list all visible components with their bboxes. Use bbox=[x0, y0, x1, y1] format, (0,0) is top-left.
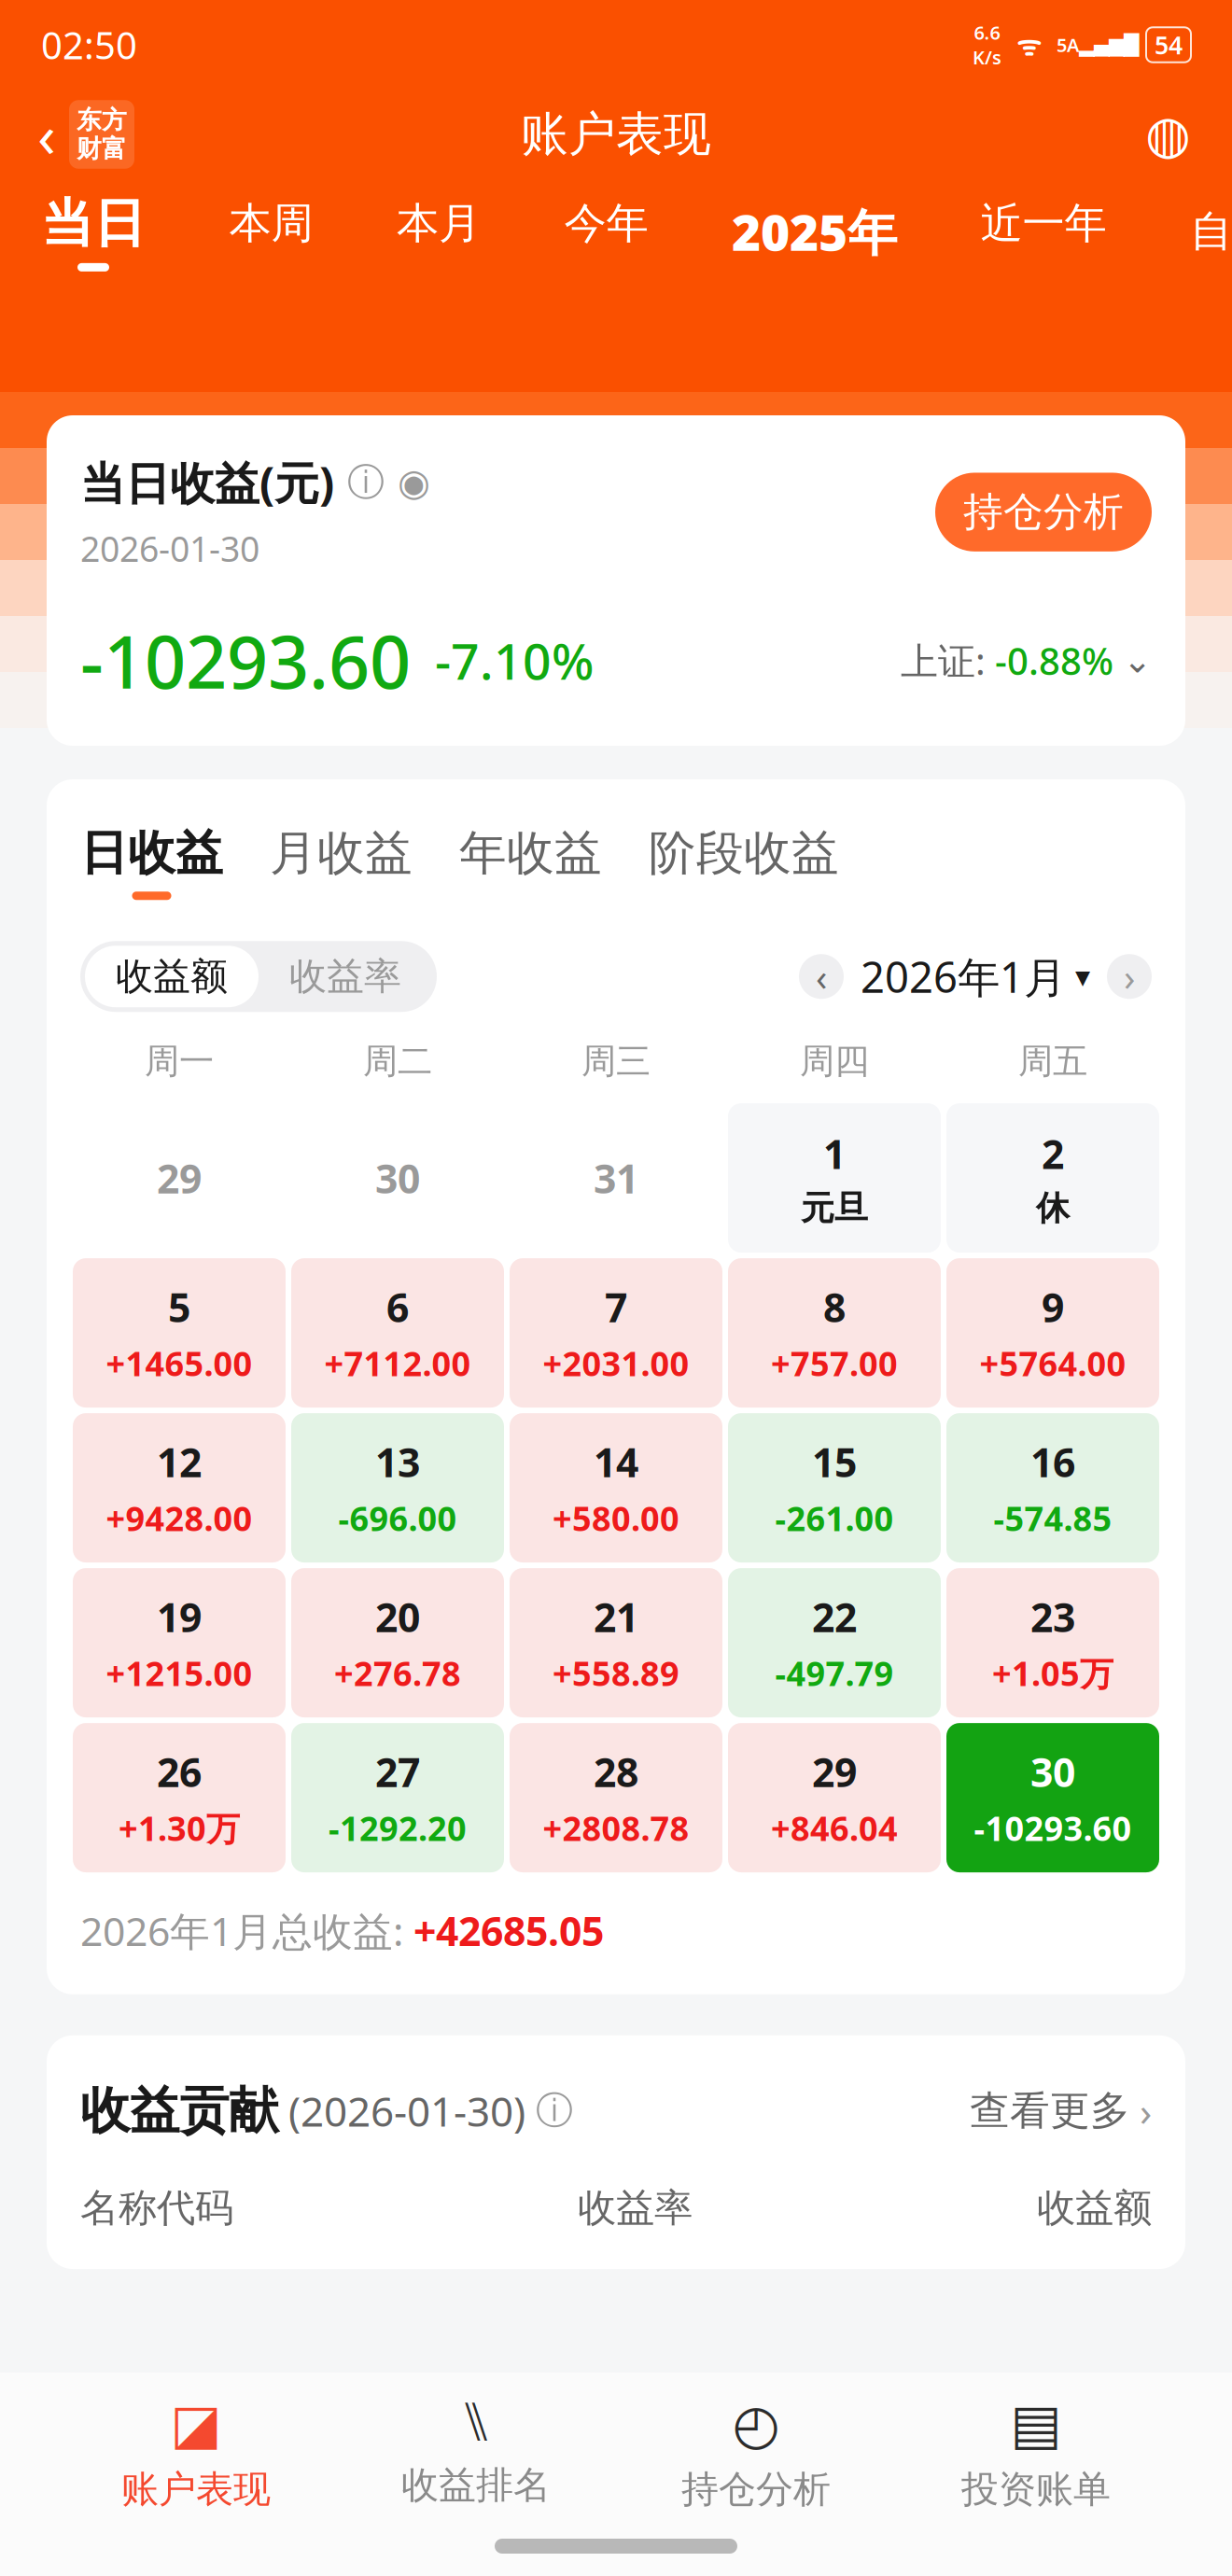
button[interactable]: 年收益 bbox=[459, 824, 602, 900]
staticText: ‹ bbox=[816, 952, 827, 1001]
staticText: ◴ bbox=[732, 2393, 780, 2455]
staticText: 12 bbox=[157, 1435, 202, 1488]
staticText: ◉ bbox=[398, 461, 430, 504]
staticText: 2 bbox=[1042, 1127, 1064, 1180]
button[interactable]: 19 bbox=[73, 1568, 286, 1717]
button[interactable]: ◪ bbox=[56, 2387, 336, 2518]
button[interactable]: 5 bbox=[73, 1258, 286, 1408]
button[interactable]: 29 bbox=[73, 1103, 286, 1253]
button[interactable]: 2026年1月 bbox=[861, 948, 1090, 1005]
button[interactable]: 8 bbox=[728, 1258, 941, 1408]
button[interactable]: 31 bbox=[510, 1103, 722, 1253]
staticText: ⓘ bbox=[536, 2088, 573, 2134]
button[interactable]: 20 bbox=[291, 1568, 504, 1717]
button[interactable]: 近一年 bbox=[980, 192, 1106, 271]
staticText: +7112.00 bbox=[324, 1341, 471, 1385]
staticText: 02:50 bbox=[41, 20, 137, 70]
staticText: ▂▄▆█ bbox=[1079, 34, 1139, 56]
button[interactable]: 本周 bbox=[229, 192, 313, 271]
button[interactable]: 本月 bbox=[397, 192, 481, 271]
button[interactable]: 月收益 bbox=[270, 824, 413, 900]
button[interactable]: 隐藏金额 bbox=[398, 461, 430, 504]
staticText: 查看更多 bbox=[970, 2086, 1130, 2135]
button[interactable]: 今年 bbox=[564, 192, 648, 271]
staticText: 22 bbox=[812, 1590, 857, 1643]
button[interactable]: 14 bbox=[510, 1413, 722, 1562]
button[interactable]: 持仓分析 bbox=[935, 473, 1152, 552]
staticText: 5A bbox=[1057, 32, 1079, 57]
staticText: 6 bbox=[386, 1280, 409, 1333]
button[interactable]: 阶段收益 bbox=[649, 824, 839, 900]
staticText: +276.78 bbox=[334, 1651, 461, 1695]
button[interactable]: 收益额 bbox=[85, 946, 259, 1007]
staticText: 自 bbox=[1190, 206, 1232, 258]
button[interactable]: 21 bbox=[510, 1568, 722, 1717]
button[interactable]: 30 bbox=[291, 1103, 504, 1253]
button[interactable]: 13 bbox=[291, 1413, 504, 1562]
staticText: 月收益 bbox=[270, 824, 413, 882]
button[interactable]: ▤ bbox=[896, 2387, 1176, 2518]
staticText: +757.00 bbox=[771, 1341, 898, 1385]
staticText: › bbox=[1124, 952, 1135, 1001]
staticText: +9428.00 bbox=[106, 1496, 252, 1540]
staticText: 19 bbox=[157, 1590, 202, 1643]
staticText: 20 bbox=[375, 1590, 420, 1643]
staticText: 休 bbox=[1036, 1187, 1070, 1229]
button[interactable]: ⑊ bbox=[336, 2387, 616, 2518]
staticText: 23 bbox=[1030, 1590, 1075, 1643]
staticText: 周三 bbox=[581, 1040, 651, 1083]
staticText: 周二 bbox=[363, 1040, 432, 1083]
button[interactable]: 当日 bbox=[41, 186, 146, 277]
button[interactable]: 9 bbox=[946, 1258, 1159, 1408]
staticText: ⓘ bbox=[347, 459, 385, 505]
button[interactable]: 27 bbox=[291, 1723, 504, 1872]
button[interactable]: 26 bbox=[73, 1723, 286, 1872]
staticText: -696.00 bbox=[338, 1496, 457, 1540]
button[interactable]: 下一月 bbox=[1107, 954, 1152, 999]
button[interactable]: 6 bbox=[291, 1258, 504, 1408]
button[interactable]: 查看更多 bbox=[970, 2084, 1152, 2137]
staticText: 当日收益(元) bbox=[80, 453, 334, 512]
button[interactable]: 7 bbox=[510, 1258, 722, 1408]
button[interactable]: 收益率 bbox=[259, 946, 432, 1007]
button[interactable]: 29 bbox=[728, 1723, 941, 1872]
staticText: 2025年 bbox=[732, 198, 897, 265]
staticText: ᯤ bbox=[1001, 27, 1057, 63]
button[interactable]: 日收益 bbox=[80, 824, 223, 900]
staticText: 26 bbox=[157, 1745, 202, 1798]
staticText: 6.6 bbox=[974, 20, 1000, 45]
staticText: 27 bbox=[375, 1745, 420, 1798]
button[interactable]: 账户 bbox=[1145, 95, 1232, 173]
staticText: ◪ bbox=[170, 2393, 222, 2455]
staticText: 名称代码 bbox=[80, 2184, 233, 2232]
button[interactable]: ◴ bbox=[616, 2387, 896, 2518]
button[interactable]: 23 bbox=[946, 1568, 1159, 1717]
button[interactable]: 16 bbox=[946, 1413, 1159, 1562]
staticText: +5764.00 bbox=[980, 1341, 1126, 1385]
button[interactable]: 2 bbox=[946, 1103, 1159, 1253]
staticText: 54 bbox=[1155, 28, 1183, 61]
button[interactable]: 22 bbox=[728, 1568, 941, 1717]
staticText: -10293.60 bbox=[974, 1806, 1132, 1850]
button[interactable]: 2025年 bbox=[732, 193, 897, 270]
button[interactable]: 15 bbox=[728, 1413, 941, 1562]
button[interactable]: 返回 东方财富 bbox=[0, 85, 134, 183]
staticText: +1465.00 bbox=[106, 1341, 252, 1385]
staticText: +1.30万 bbox=[119, 1806, 240, 1850]
button[interactable]: 上一月 bbox=[799, 954, 844, 999]
button[interactable]: 12 bbox=[73, 1413, 286, 1562]
staticText: -261.00 bbox=[775, 1496, 894, 1540]
staticText: 13 bbox=[375, 1435, 420, 1488]
staticText: 16 bbox=[1030, 1435, 1075, 1488]
staticText: -10293.60 bbox=[80, 613, 411, 708]
button[interactable]: 28 bbox=[510, 1723, 722, 1872]
button[interactable]: 1 bbox=[728, 1103, 941, 1253]
button[interactable]: 上证: bbox=[901, 636, 1152, 685]
button[interactable]: 说明 bbox=[347, 459, 385, 505]
button[interactable]: 说明 bbox=[536, 2088, 573, 2134]
staticText: 日收益 bbox=[80, 824, 223, 882]
staticText: ⌄ bbox=[1123, 641, 1152, 680]
staticText: ▾ bbox=[1075, 960, 1090, 993]
staticText: 账户表现 bbox=[121, 2467, 271, 2512]
button[interactable]: 30 bbox=[946, 1723, 1159, 1872]
